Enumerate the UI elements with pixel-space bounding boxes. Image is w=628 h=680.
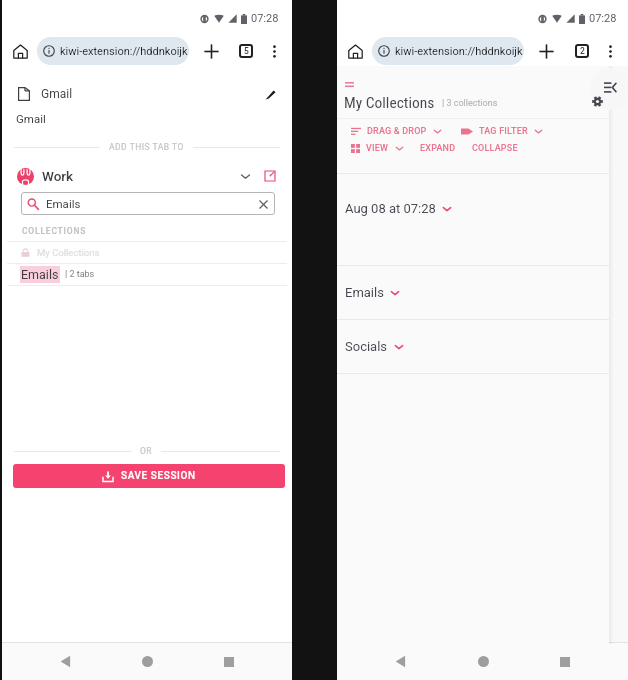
button[interactable]: Edit bbox=[259, 83, 281, 105]
button[interactable]: Tabs bbox=[239, 44, 253, 58]
button[interactable]: Clear search bbox=[255, 196, 271, 212]
button[interactable]: Recent apps bbox=[546, 643, 584, 680]
staticText: 5 bbox=[244, 46, 249, 56]
staticText: | 3 collections bbox=[442, 98, 498, 109]
staticText: Work bbox=[42, 168, 74, 184]
button[interactable]: TAG FILTER bbox=[461, 126, 543, 137]
button[interactable]: Recent apps bbox=[210, 643, 248, 680]
button[interactable]: EXPAND bbox=[420, 143, 456, 154]
button[interactable]: Emails bbox=[21, 192, 275, 215]
staticText: My Collections bbox=[37, 247, 100, 258]
staticText: COLLAPSE bbox=[472, 143, 518, 154]
staticText: Emails bbox=[21, 267, 59, 282]
button[interactable]: Settings bbox=[588, 92, 606, 110]
button[interactable]: DRAG & DROP bbox=[351, 126, 442, 137]
staticText: COLLECTIONS bbox=[22, 226, 87, 236]
button[interactable]: Open collection bbox=[259, 165, 281, 187]
staticText: 07:28 bbox=[251, 12, 279, 25]
button[interactable]: VIEW bbox=[351, 143, 404, 154]
button[interactable]: Home bbox=[464, 643, 502, 680]
staticText: Emails bbox=[345, 285, 384, 300]
staticText: Socials bbox=[345, 339, 388, 354]
button[interactable]: My Collections bbox=[2, 242, 292, 263]
button[interactable]: Aug 08 at 07:28 bbox=[337, 173, 609, 265]
staticText: ADD THIS TAB TO bbox=[109, 142, 184, 152]
button[interactable]: New tab bbox=[199, 39, 223, 63]
button[interactable]: Collapse panel bbox=[590, 68, 628, 110]
staticText: VIEW bbox=[366, 143, 389, 154]
staticText: TAG FILTER bbox=[479, 126, 528, 137]
staticText: Emails bbox=[46, 197, 81, 210]
button[interactable]: Work bbox=[2, 162, 292, 190]
button[interactable]: More options bbox=[599, 40, 621, 62]
staticText: Gmail bbox=[41, 87, 73, 101]
button[interactable]: Expand bbox=[234, 165, 256, 187]
button[interactable]: SAVE SESSION bbox=[13, 464, 285, 488]
staticText: SAVE SESSION bbox=[121, 470, 196, 482]
staticText: Gmail bbox=[16, 112, 46, 125]
staticText: EXPAND bbox=[420, 143, 456, 154]
button[interactable]: Emails bbox=[2, 264, 292, 285]
button[interactable]: kiwi-extension://hddnkoijk bbox=[37, 37, 189, 65]
button[interactable]: Back bbox=[381, 643, 419, 680]
button[interactable]: Gmail bbox=[2, 80, 292, 108]
staticText: 07:28 bbox=[589, 12, 617, 25]
staticText: 2 bbox=[580, 46, 585, 56]
button[interactable]: Home bbox=[7, 38, 33, 64]
staticText: kiwi-extension://hddnkoijk bbox=[395, 45, 523, 58]
staticText: kiwi-extension://hddnkoijk bbox=[60, 45, 188, 58]
button[interactable]: Home bbox=[128, 643, 166, 680]
staticText: Aug 08 at 07:28 bbox=[345, 201, 436, 216]
button[interactable]: Emails bbox=[337, 265, 609, 319]
staticText: | 2 tabs bbox=[65, 269, 95, 280]
staticText: OR bbox=[140, 446, 153, 456]
button[interactable]: Back bbox=[46, 643, 84, 680]
staticText: My Collections bbox=[344, 94, 435, 112]
button[interactable]: Tabs bbox=[575, 44, 589, 58]
staticText: DRAG & DROP bbox=[367, 126, 427, 137]
button[interactable]: Home bbox=[342, 38, 368, 64]
button[interactable]: COLLAPSE bbox=[472, 143, 518, 154]
button[interactable]: kiwi-extension://hddnkoijk bbox=[372, 37, 524, 65]
button[interactable]: Socials bbox=[337, 319, 609, 373]
button[interactable]: New tab bbox=[534, 39, 558, 63]
button[interactable]: More options bbox=[263, 40, 285, 62]
